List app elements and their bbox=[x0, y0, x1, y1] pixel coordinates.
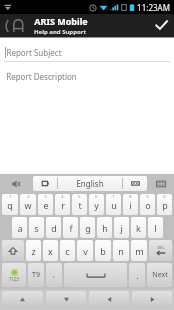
button[interactable]: 1 bbox=[2, 194, 18, 215]
staticText: 8 bbox=[129, 194, 132, 199]
button[interactable]: 4 bbox=[55, 194, 70, 215]
button[interactable]: Report Subject bbox=[0, 44, 174, 61]
staticText: e bbox=[43, 199, 49, 211]
button[interactable]: Keyboard settings bbox=[150, 176, 172, 191]
staticText: m bbox=[135, 245, 144, 257]
button[interactable]: c bbox=[60, 240, 75, 261]
staticText: 3 bbox=[44, 194, 47, 199]
staticText: w bbox=[24, 199, 32, 211]
staticText: l bbox=[154, 222, 157, 234]
button[interactable]: 9 bbox=[140, 194, 155, 215]
staticText: 1 bbox=[9, 194, 12, 199]
button[interactable]: Symbols bbox=[2, 263, 26, 287]
button[interactable]: l bbox=[148, 217, 163, 238]
staticText: k bbox=[136, 222, 141, 234]
button[interactable]: Right bbox=[132, 291, 172, 308]
button[interactable]: . bbox=[129, 263, 145, 287]
staticText: h bbox=[102, 222, 108, 234]
button[interactable]: b bbox=[95, 240, 111, 261]
staticText: DEL bbox=[157, 245, 165, 250]
button[interactable]: Clipboard bbox=[33, 176, 147, 191]
staticText: v bbox=[83, 245, 88, 257]
staticText: ARIS Mobile bbox=[34, 15, 88, 27]
button[interactable]: Up bbox=[2, 291, 43, 308]
staticText: Report Subject bbox=[6, 47, 62, 58]
staticText: 5 bbox=[78, 194, 81, 199]
staticText: Report Description bbox=[6, 71, 77, 82]
staticText: s bbox=[34, 222, 39, 234]
button[interactable]: h bbox=[97, 217, 112, 238]
button[interactable]: a bbox=[12, 217, 27, 238]
staticText: Next bbox=[152, 270, 168, 280]
staticText: b bbox=[100, 245, 106, 257]
staticText: x bbox=[48, 245, 53, 257]
staticText: n bbox=[118, 245, 124, 257]
staticText: T9 bbox=[32, 270, 40, 280]
staticText: 6 bbox=[95, 194, 98, 199]
staticText: o bbox=[145, 199, 151, 211]
button[interactable]: x bbox=[43, 240, 58, 261]
button[interactable]: Clipboard bbox=[33, 176, 57, 191]
staticText: a bbox=[17, 222, 23, 234]
staticText: c bbox=[65, 245, 70, 257]
button[interactable]: Next bbox=[147, 263, 172, 287]
staticText: t bbox=[78, 199, 82, 211]
staticText: f bbox=[69, 222, 73, 234]
staticText: g bbox=[85, 222, 91, 234]
button[interactable]: Left bbox=[89, 291, 129, 308]
button[interactable]: 8 bbox=[123, 194, 138, 215]
staticText: 9 bbox=[146, 194, 149, 199]
button[interactable]: 5 bbox=[72, 194, 87, 215]
staticText: d bbox=[51, 222, 57, 234]
staticText: 2 bbox=[27, 194, 30, 199]
staticText: 4 bbox=[61, 194, 64, 199]
staticText: u bbox=[111, 199, 117, 211]
button[interactable]: d bbox=[46, 217, 61, 238]
button[interactable]: v bbox=[77, 240, 93, 261]
staticText: English bbox=[76, 178, 104, 189]
button[interactable]: Space bbox=[64, 263, 127, 287]
button[interactable]: Voice input bbox=[2, 176, 30, 191]
button[interactable]: Delete bbox=[149, 240, 172, 261]
staticText: j bbox=[120, 222, 123, 234]
button[interactable]: 7 bbox=[106, 194, 121, 215]
staticText: 11:23AM bbox=[137, 2, 170, 13]
button[interactable]: k bbox=[131, 217, 146, 238]
button[interactable]: Down bbox=[46, 291, 86, 308]
staticText: q bbox=[7, 199, 13, 211]
staticText: z bbox=[31, 245, 36, 257]
button[interactable]: Done bbox=[148, 14, 174, 37]
button[interactable]: Navigate up, ARIS logo bbox=[0, 14, 34, 37]
staticText: ?123 bbox=[9, 276, 19, 282]
button[interactable]: 6 bbox=[89, 194, 104, 215]
button[interactable]: Handwriting bbox=[123, 176, 147, 191]
button[interactable]: s bbox=[29, 217, 44, 238]
staticText: i bbox=[129, 199, 132, 211]
staticText: r bbox=[61, 199, 65, 211]
staticText: . bbox=[136, 270, 139, 281]
staticText: p bbox=[162, 199, 168, 211]
staticText: 7 bbox=[112, 194, 115, 199]
button[interactable]: m bbox=[131, 240, 147, 261]
staticText: y bbox=[94, 199, 99, 211]
button[interactable]: f bbox=[63, 217, 78, 238]
button[interactable]: Shift bbox=[2, 240, 24, 261]
button[interactable]: z bbox=[26, 240, 41, 261]
button[interactable]: j bbox=[114, 217, 129, 238]
button[interactable]: , bbox=[46, 263, 62, 287]
button[interactable]: 2 bbox=[20, 194, 36, 215]
button[interactable]: T9 bbox=[28, 263, 44, 287]
button[interactable]: Report Description bbox=[6, 68, 174, 84]
staticText: , bbox=[53, 270, 55, 280]
button[interactable]: 3 bbox=[38, 194, 53, 215]
staticText: 0 bbox=[163, 194, 166, 199]
button[interactable]: 0 bbox=[157, 194, 172, 215]
staticText: Help and Support bbox=[34, 28, 86, 36]
button[interactable]: g bbox=[80, 217, 95, 238]
button[interactable]: n bbox=[113, 240, 129, 261]
